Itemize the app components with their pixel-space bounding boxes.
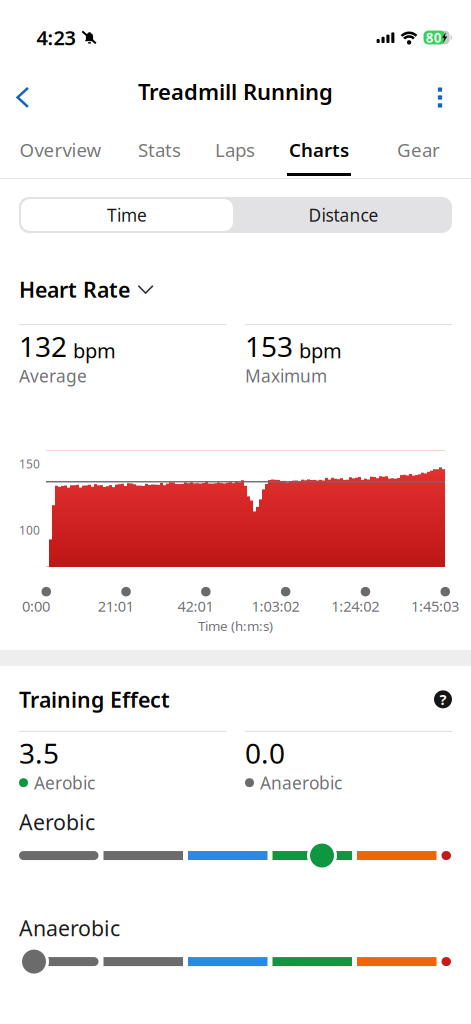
button[interactable]: Distance xyxy=(235,197,452,233)
staticText: 153 xyxy=(245,327,293,365)
staticText: 132 xyxy=(19,327,67,365)
button[interactable]: Training effect help xyxy=(434,690,452,708)
staticText: Training Effect xyxy=(19,685,170,714)
staticText: Aerobic xyxy=(34,771,95,794)
staticText: Laps xyxy=(215,137,255,162)
staticText: 150 xyxy=(19,456,40,472)
staticText: Gear xyxy=(397,137,440,162)
staticText: 4:23 xyxy=(36,24,75,51)
staticText: Charts xyxy=(289,137,349,162)
staticText: 21:01 xyxy=(98,596,134,616)
staticText: 42:01 xyxy=(178,596,214,616)
button[interactable]: Charts xyxy=(272,120,366,178)
staticText: Maximum xyxy=(245,364,327,388)
staticText: 1:45:03 xyxy=(411,596,459,616)
staticText: Time (h:m:s) xyxy=(198,617,273,635)
staticText: Treadmill Running xyxy=(138,76,333,106)
staticText: Heart Rate xyxy=(19,275,130,304)
staticText: ? xyxy=(439,689,446,709)
button[interactable]: Time xyxy=(19,197,235,233)
staticText: 1:24:02 xyxy=(331,596,379,616)
staticText: 3.5 xyxy=(19,734,59,772)
staticText: Aerobic xyxy=(19,807,95,837)
button[interactable]: Back xyxy=(0,75,44,119)
staticText: Time xyxy=(107,203,147,227)
staticText: 0.0 xyxy=(245,734,285,772)
staticText: 0:00 xyxy=(22,596,50,616)
staticText: bpm xyxy=(73,337,116,364)
button[interactable]: Laps xyxy=(198,120,272,178)
staticText: Average xyxy=(19,364,87,388)
button[interactable]: Stats xyxy=(121,120,198,178)
staticText: Stats xyxy=(138,137,181,162)
button[interactable]: More options xyxy=(417,75,471,119)
button[interactable]: Overview xyxy=(0,120,121,178)
staticText: Anaerobic xyxy=(19,913,120,943)
staticText: 100 xyxy=(19,522,40,538)
staticText: Distance xyxy=(308,203,378,227)
staticText: bpm xyxy=(299,337,342,364)
staticText: 80 xyxy=(426,28,442,47)
staticText: Anaerobic xyxy=(260,771,342,794)
staticText: Overview xyxy=(19,137,101,162)
staticText: 1:03:02 xyxy=(251,596,299,616)
button[interactable]: Gear xyxy=(366,120,471,178)
